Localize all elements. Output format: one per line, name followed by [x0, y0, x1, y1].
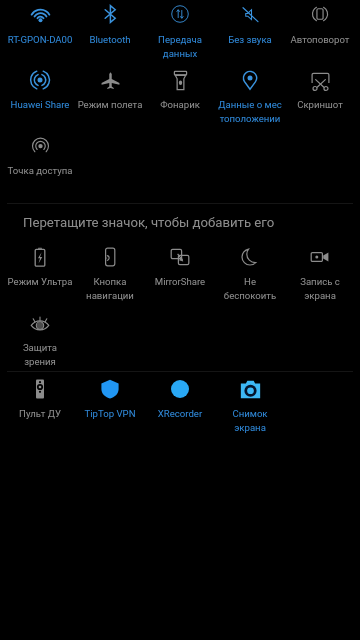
button[interactable]: Пульт ДУ [5, 375, 75, 427]
button[interactable]: Без звука [215, 0, 285, 52]
staticText: Фонарик [147, 99, 213, 110]
staticText: Перетащите значок, чтобы добавить его [23, 215, 275, 230]
staticText: MirrorShare [147, 276, 213, 287]
button[interactable]: MirrorShare [145, 243, 215, 295]
button[interactable]: Кнопка навигации [75, 243, 145, 295]
staticText: Защита зрения [7, 342, 73, 367]
staticText: Кнопка навигации [77, 276, 143, 301]
button[interactable]: Автоповорот [285, 0, 355, 52]
staticText: Не беспокоить [217, 276, 283, 301]
button[interactable]: Bluetooth [75, 0, 145, 52]
staticText: Режим полета [77, 99, 143, 110]
staticText: RT-GPON-DA00 [7, 34, 73, 45]
button[interactable]: TipTop VPN [75, 375, 145, 427]
button[interactable]: Данные о местоположении [215, 66, 285, 118]
staticText: Передача данных [147, 34, 213, 59]
staticText: Пульт ДУ [7, 408, 73, 419]
button[interactable]: Режим Ультра [5, 243, 75, 295]
button[interactable]: Снимок экрана [215, 375, 285, 427]
staticText: XRecorder [147, 408, 213, 419]
button[interactable]: Huawei Share [5, 66, 75, 118]
staticText: Данные о местоположении [217, 99, 283, 124]
button[interactable]: Не беспокоить [215, 243, 285, 295]
staticText: Скриншот [287, 99, 353, 110]
button[interactable]: Скриншот [285, 66, 355, 118]
staticText: Режим Ультра [7, 276, 73, 287]
button[interactable]: Передача данных [145, 0, 215, 52]
staticText: Запись с экрана [287, 276, 353, 301]
button[interactable]: RT-GPON-DA00 [5, 0, 75, 51]
staticText: TipTop VPN [77, 408, 143, 419]
staticText: Снимок экрана [217, 408, 283, 433]
staticText: Автоповорот [287, 34, 353, 45]
staticText: Huawei Share [7, 99, 73, 110]
button[interactable]: Точка доступа [5, 132, 75, 184]
button[interactable]: Фонарик [145, 66, 215, 118]
button[interactable]: Режим полета [75, 66, 145, 118]
button[interactable]: XRecorder [145, 375, 215, 427]
staticText: Без звука [217, 34, 283, 45]
staticText: Точка доступа [7, 165, 73, 176]
button[interactable]: Защита зрения [5, 309, 75, 361]
staticText: Bluetooth [77, 34, 143, 45]
button[interactable]: Запись с экрана [285, 243, 355, 295]
